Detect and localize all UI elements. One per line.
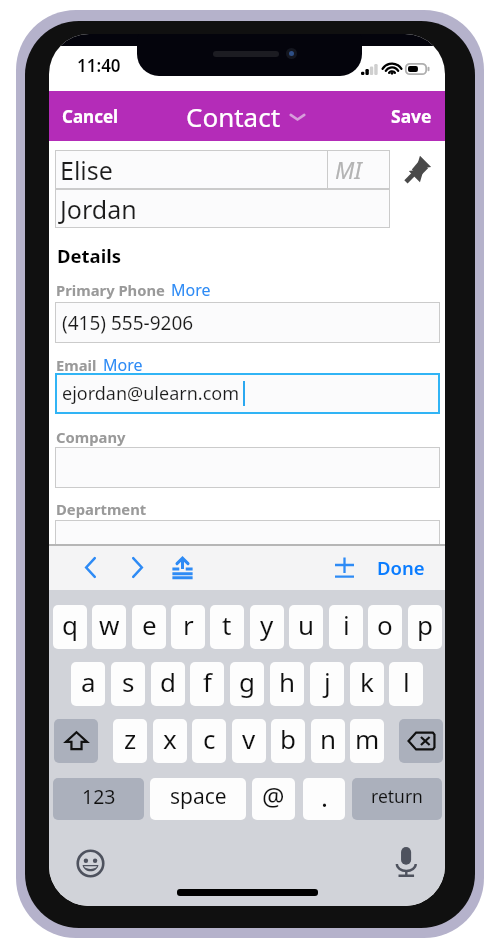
staticText: u — [298, 607, 315, 642]
button[interactable]: d — [151, 662, 185, 706]
button[interactable]: l — [389, 662, 423, 706]
button[interactable]: Save — [378, 94, 445, 138]
staticText: Elise — [60, 153, 113, 187]
button[interactable]: x — [153, 719, 187, 763]
button[interactable]: q — [53, 605, 87, 649]
button[interactable] — [54, 719, 98, 763]
staticText: g — [239, 664, 255, 699]
button[interactable]: Done — [371, 550, 431, 585]
button[interactable]: c — [192, 719, 226, 763]
staticText: n — [320, 721, 337, 756]
staticText: k — [360, 664, 374, 699]
button[interactable]: return — [352, 778, 442, 820]
staticText: return — [371, 784, 423, 808]
button[interactable]: 123 — [53, 778, 144, 820]
staticText: Jordan — [60, 192, 137, 226]
button[interactable] — [55, 447, 440, 488]
staticText: j — [324, 664, 331, 699]
button[interactable]: u — [289, 605, 323, 649]
staticText: p — [417, 607, 433, 642]
staticText: o — [377, 607, 393, 642]
button[interactable]: Cancel — [49, 95, 132, 138]
button[interactable]: f — [190, 662, 224, 706]
button[interactable]: Pin contact — [401, 152, 435, 186]
button[interactable]: y — [250, 605, 284, 649]
button[interactable]: . — [303, 778, 345, 820]
button[interactable]: Jordan — [55, 189, 390, 228]
button[interactable]: Insert field above — [162, 547, 202, 587]
button[interactable]: e — [132, 605, 166, 649]
staticText: f — [203, 664, 212, 699]
staticText: Done — [377, 555, 425, 580]
staticText: l — [403, 664, 410, 699]
button[interactable]: Emoji keyboard — [73, 846, 107, 880]
button[interactable]: t — [210, 605, 244, 649]
button[interactable]: s — [111, 662, 145, 706]
staticText: i — [343, 607, 350, 642]
staticText: MI — [335, 154, 362, 185]
button[interactable] — [399, 719, 443, 763]
staticText: w — [99, 607, 120, 642]
button[interactable]: o — [368, 605, 402, 649]
staticText: s — [122, 664, 135, 699]
button[interactable]: z — [113, 719, 147, 763]
staticText: y — [260, 607, 274, 642]
button[interactable]: g — [230, 662, 264, 706]
button[interactable]: i — [329, 605, 363, 649]
staticText: a — [81, 664, 96, 699]
staticText: Email — [56, 355, 97, 375]
staticText: More — [103, 354, 143, 376]
staticText: Primary Phone — [56, 280, 165, 300]
staticText: q — [62, 607, 78, 642]
staticText: Save — [391, 104, 432, 128]
staticText: Company — [56, 427, 126, 447]
button[interactable]: a — [71, 662, 105, 706]
button[interactable]: Previous field — [73, 548, 107, 586]
button[interactable]: n — [311, 719, 345, 763]
staticText: 123 — [82, 783, 116, 810]
staticText: r — [183, 607, 194, 642]
button[interactable]: Contact — [186, 99, 306, 134]
staticText: space — [170, 782, 227, 811]
staticText: v — [242, 721, 256, 756]
button[interactable]: Elise — [55, 150, 327, 189]
button[interactable]: h — [270, 662, 304, 706]
button[interactable]: (415) 555-9206 — [55, 302, 440, 343]
button[interactable]: Add field — [326, 548, 362, 586]
button[interactable]: k — [350, 662, 384, 706]
button[interactable]: j — [310, 662, 344, 706]
button[interactable]: @ — [252, 778, 295, 820]
button[interactable]: r — [171, 605, 205, 649]
staticText: t — [222, 607, 232, 642]
staticText: h — [279, 664, 296, 699]
staticText: e — [142, 607, 157, 642]
staticText: 11:40 — [77, 54, 121, 77]
button[interactable]: w — [92, 605, 126, 649]
staticText: @ — [262, 779, 285, 813]
button[interactable]: m — [350, 719, 384, 763]
button[interactable]: Next field — [120, 548, 154, 586]
staticText: Details — [57, 243, 122, 268]
button[interactable]: MI — [328, 150, 390, 189]
button[interactable]: More — [103, 354, 143, 376]
staticText: (415) 555-9206 — [62, 310, 194, 336]
staticText: Department — [56, 499, 147, 519]
button[interactable]: ejordan@ulearn.com — [55, 373, 440, 414]
staticText: Contact — [186, 99, 281, 134]
staticText: Cancel — [62, 105, 119, 128]
button[interactable]: More — [171, 279, 211, 301]
button[interactable]: space — [150, 778, 246, 820]
staticText: . — [321, 779, 328, 814]
button[interactable]: v — [232, 719, 266, 763]
button[interactable]: b — [271, 719, 305, 763]
staticText: b — [280, 721, 296, 756]
button[interactable]: Dictation — [389, 845, 423, 879]
staticText: z — [124, 721, 137, 756]
staticText: x — [163, 721, 177, 756]
staticText: More — [171, 279, 211, 301]
staticText: m — [355, 721, 380, 756]
staticText: d — [160, 664, 176, 699]
staticText: ejordan@ulearn.com — [62, 381, 239, 406]
button[interactable]: p — [408, 605, 442, 649]
button[interactable] — [55, 520, 440, 561]
